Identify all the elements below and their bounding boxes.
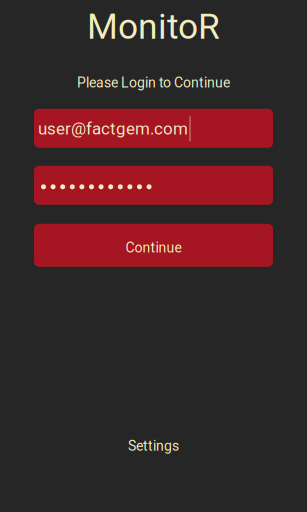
button[interactable]: Settings <box>88 431 218 461</box>
staticText: Settings <box>128 438 179 454</box>
button[interactable]: Email address, user@factgem.com <box>34 109 273 148</box>
button[interactable]: Continue <box>34 224 273 267</box>
staticText: Please Login to Continue <box>77 74 230 91</box>
button[interactable]: Password <box>34 166 273 205</box>
staticText: user@factgem.com <box>38 119 188 139</box>
staticText: Continue <box>125 240 181 256</box>
staticText: MonitoR <box>87 6 220 47</box>
